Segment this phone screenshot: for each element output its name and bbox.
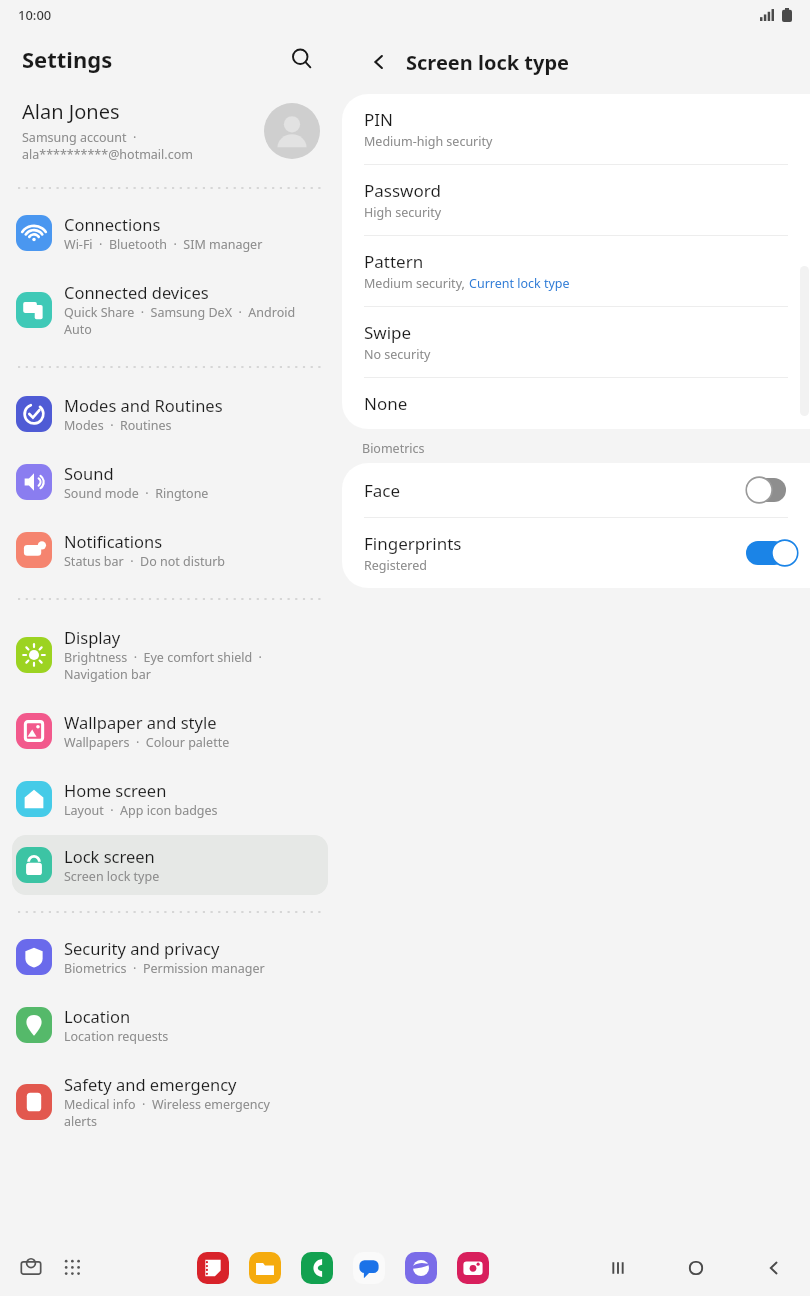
button[interactable]: Password <box>342 165 810 236</box>
staticText: Wallpapers · Colour palette <box>64 734 230 751</box>
button[interactable]: Modes and Routines <box>12 384 328 444</box>
staticText: Location <box>64 1005 131 1027</box>
button[interactable]: Home <box>674 1246 718 1290</box>
staticText: Settings <box>22 44 113 74</box>
button[interactable]: Location <box>12 995 328 1055</box>
staticText: Layout · App icon badges <box>64 802 218 819</box>
staticText: Registered <box>364 557 427 574</box>
button[interactable]: Search <box>282 39 322 79</box>
staticText: Pattern <box>364 250 424 273</box>
staticText: Lock screen <box>64 845 155 867</box>
staticText: Status bar · Do not disturb <box>64 553 226 570</box>
staticText: Fingerprints <box>364 532 462 555</box>
staticText: Alan Jones <box>22 98 120 125</box>
staticText: Home screen <box>64 779 167 801</box>
staticText: Sound mode · Ringtone <box>64 485 209 502</box>
staticText: Medium security, <box>364 275 469 292</box>
button[interactable]: App <box>353 1252 385 1284</box>
staticText: Brightness · Eye comfort shield · Naviga… <box>64 649 262 683</box>
staticText: ala**********@hotmail.com <box>22 146 193 163</box>
staticText: Sound <box>64 462 114 484</box>
button[interactable]: Recent apps <box>596 1246 640 1290</box>
staticText: Biometrics <box>362 440 425 457</box>
button[interactable]: Notifications <box>12 520 328 580</box>
button[interactable]: Safety and emergency <box>12 1063 328 1140</box>
button[interactable]: Connected devices <box>12 271 328 348</box>
staticText: Medical info · Wireless emergency alerts <box>64 1096 270 1130</box>
button[interactable]: App <box>249 1252 281 1284</box>
button[interactable]: Fingerprints <box>342 518 810 588</box>
button[interactable]: None <box>342 378 810 429</box>
button[interactable]: App <box>405 1252 437 1284</box>
staticText: Notifications <box>64 530 163 552</box>
staticText: Medium-high security <box>364 133 493 150</box>
button[interactable]: Display <box>12 616 328 693</box>
button[interactable]: Lock screen <box>12 835 328 895</box>
staticText: Biometrics · Permission manager <box>64 960 265 977</box>
staticText: High security <box>364 204 442 221</box>
button[interactable]: Recents <box>14 1251 48 1285</box>
button[interactable]: Connections <box>12 203 328 263</box>
staticText: None <box>364 392 408 415</box>
button[interactable]: Security and privacy <box>12 927 328 987</box>
staticText: Screen lock type <box>64 868 160 885</box>
staticText: Safety and emergency <box>64 1073 237 1095</box>
button[interactable]: Home screen <box>12 769 328 829</box>
button[interactable]: Apps <box>56 1251 90 1285</box>
staticText: Wi-Fi · Bluetooth · SIM manager <box>64 236 263 253</box>
staticText: Modes and Routines <box>64 394 223 416</box>
staticText: Samsung account · <box>22 129 137 146</box>
staticText: Modes · Routines <box>64 417 172 434</box>
staticText: Display <box>64 626 121 648</box>
button[interactable]: PIN <box>342 94 810 165</box>
button[interactable]: Pattern <box>342 236 810 307</box>
button[interactable]: Face <box>342 463 810 518</box>
staticText: Connections <box>64 213 161 235</box>
staticText: Location requests <box>64 1028 169 1045</box>
staticText: PIN <box>364 108 393 131</box>
staticText: Face <box>364 479 401 502</box>
staticText: Quick Share · Samsung DeX · Android Auto <box>64 304 296 338</box>
staticText: Password <box>364 179 441 202</box>
button[interactable]: Alan Jones <box>0 88 340 175</box>
staticText: Security and privacy <box>64 937 220 959</box>
button[interactable]: Back <box>362 45 396 79</box>
button[interactable]: Swipe <box>342 307 810 378</box>
staticText: Wallpaper and style <box>64 711 217 733</box>
button[interactable]: App <box>457 1252 489 1284</box>
button[interactable]: App <box>197 1252 229 1284</box>
staticText: No security <box>364 346 431 363</box>
button[interactable]: App <box>301 1252 333 1284</box>
button[interactable]: Back <box>752 1246 796 1290</box>
staticText: 10:00 <box>18 6 52 24</box>
staticText: Current lock type <box>469 275 570 292</box>
staticText: Connected devices <box>64 281 209 303</box>
staticText: Swipe <box>364 321 412 344</box>
button[interactable]: Wallpaper and style <box>12 701 328 761</box>
button[interactable]: Sound <box>12 452 328 512</box>
staticText: Screen lock type <box>406 49 570 76</box>
